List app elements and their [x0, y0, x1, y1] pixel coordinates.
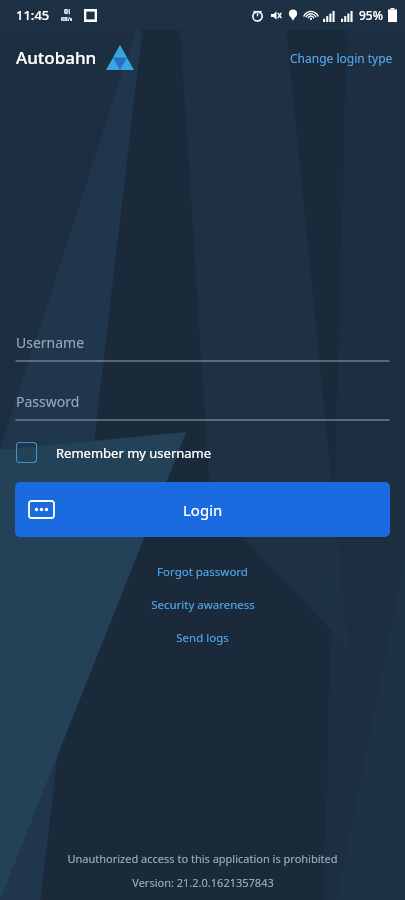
staticText: 0 — [64, 7, 69, 17]
button[interactable]: Password — [16, 392, 389, 421]
button[interactable]: Login — [15, 482, 390, 537]
button[interactable]: Send logs — [162, 627, 243, 649]
staticText: KB/s — [61, 16, 73, 23]
button[interactable]: Forgot password — [143, 561, 262, 583]
staticText: 95% — [359, 7, 383, 23]
staticText: Username — [16, 333, 85, 352]
staticText: Autobahn — [16, 46, 97, 69]
staticText: Change login type — [290, 50, 393, 66]
staticText: Unauthorized access to this application … — [67, 851, 338, 866]
staticText: Version: 21.2.0.1621357843 — [132, 875, 274, 890]
button[interactable]: Autobahn — [16, 45, 134, 70]
staticText: Remember my username — [56, 444, 212, 462]
staticText: Login — [183, 500, 223, 520]
button[interactable]: Change login type — [278, 42, 405, 74]
staticText: 11:45 — [16, 6, 50, 24]
button[interactable]: Remember my username — [0, 438, 405, 467]
button[interactable]: Security awareness — [137, 594, 269, 616]
staticText: Password — [16, 392, 80, 411]
button[interactable]: Username — [16, 333, 389, 362]
